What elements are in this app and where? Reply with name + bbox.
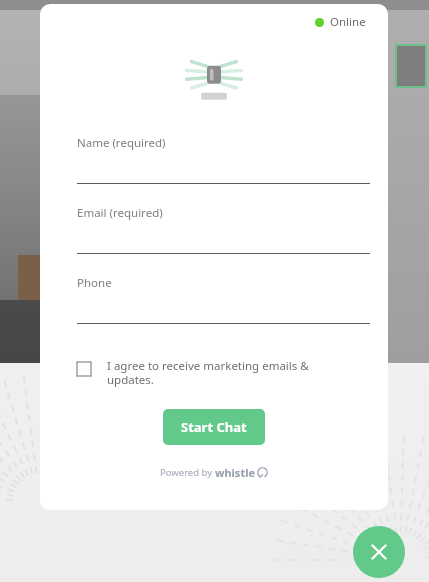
staticText: Powered by xyxy=(160,466,215,479)
staticText: Email (required) xyxy=(77,205,163,221)
staticText: Online xyxy=(330,14,366,30)
button[interactable]: I agree to receive marketing emails & up… xyxy=(77,358,377,387)
button[interactable]: Close chat xyxy=(353,526,405,578)
staticText: Name (required) xyxy=(77,135,166,151)
staticText: Start Chat xyxy=(181,418,247,436)
staticText: I agree to receive marketing emails & up… xyxy=(107,358,309,387)
staticText: Phone xyxy=(77,275,112,291)
button[interactable]: Start Chat xyxy=(163,409,265,445)
staticText: whistle xyxy=(215,465,255,480)
button[interactable]: Powered by xyxy=(160,465,268,480)
